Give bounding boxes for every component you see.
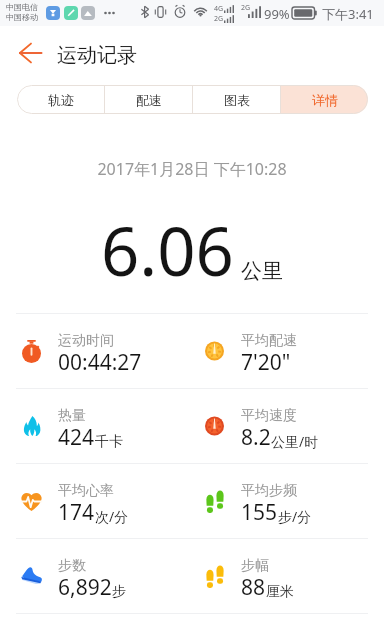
staticText: 中国电信 bbox=[6, 2, 38, 12]
staticText: 详情 bbox=[312, 92, 338, 108]
staticText: 424 bbox=[58, 423, 95, 452]
button[interactable]: Back bbox=[0, 26, 52, 85]
button[interactable]: 轨迹 bbox=[17, 85, 104, 114]
staticText: 平均速度 bbox=[241, 407, 297, 425]
button[interactable]: 运动时间 bbox=[0, 314, 192, 388]
staticText: 下午3:41 bbox=[322, 5, 374, 23]
staticText: 运动时间 bbox=[58, 332, 114, 350]
staticText: 平均步频 bbox=[241, 482, 297, 500]
staticText: 6.06 bbox=[101, 204, 234, 295]
button[interactable]: 配速 bbox=[105, 85, 192, 114]
staticText: 次/分 bbox=[95, 507, 129, 526]
staticText: 运动记录 bbox=[57, 43, 137, 68]
button[interactable]: 热量 bbox=[0, 389, 192, 463]
staticText: 2017年1月28日 下午10:28 bbox=[0, 158, 384, 180]
button[interactable]: 平均配速 bbox=[192, 314, 384, 388]
staticText: 步幅 bbox=[241, 557, 269, 575]
staticText: 厘米 bbox=[266, 583, 294, 601]
button[interactable]: 平均心率 bbox=[0, 464, 192, 538]
button[interactable]: 平均步频 bbox=[192, 464, 384, 538]
staticText: 6,892 bbox=[58, 573, 112, 602]
staticText: 公里/时 bbox=[271, 432, 319, 451]
staticText: 轨迹 bbox=[48, 92, 74, 108]
staticText: 99% bbox=[264, 5, 290, 23]
staticText: 7'20" bbox=[241, 348, 291, 377]
staticText: 2G bbox=[214, 14, 224, 24]
button[interactable]: 详情 bbox=[281, 85, 368, 114]
staticText: 平均配速 bbox=[241, 332, 297, 350]
button[interactable]: 平均速度 bbox=[192, 389, 384, 463]
staticText: 155 bbox=[241, 498, 278, 527]
staticText: 配速 bbox=[136, 92, 162, 108]
staticText: 88 bbox=[241, 573, 266, 602]
staticText: 4G bbox=[214, 4, 224, 14]
staticText: 00:44:27 bbox=[58, 348, 142, 377]
staticText: 公里 bbox=[241, 258, 283, 284]
staticText: 千卡 bbox=[95, 433, 123, 451]
staticText: 图表 bbox=[224, 92, 250, 108]
staticText: 2G bbox=[241, 3, 251, 13]
button[interactable]: 图表 bbox=[193, 85, 280, 114]
staticText: 8.2 bbox=[241, 423, 271, 452]
staticText: 热量 bbox=[58, 407, 86, 425]
button[interactable]: 步数 bbox=[0, 539, 192, 613]
button[interactable]: 步幅 bbox=[192, 539, 384, 613]
staticText: 步/分 bbox=[278, 507, 312, 526]
staticText: 174 bbox=[58, 498, 95, 527]
staticText: 平均心率 bbox=[58, 482, 114, 500]
staticText: 中国移动 bbox=[6, 12, 38, 22]
staticText: 步数 bbox=[58, 557, 86, 575]
staticText: 步 bbox=[112, 583, 126, 601]
